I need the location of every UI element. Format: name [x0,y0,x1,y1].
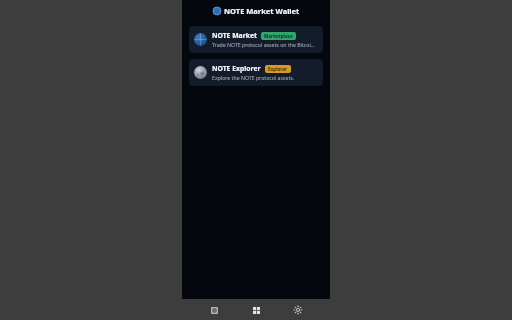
staticText: NOTE Market [212,31,257,40]
button[interactable]: Recent apps [288,300,308,320]
staticText: Trade NOTE protocol assets on the Bitcoi… [212,41,318,48]
staticText: NOTE Market Wallet [224,6,300,16]
button[interactable]: Back [204,300,224,320]
staticText: Explore the NOTE protocol assets. [212,74,295,81]
staticText: Marketplace [264,33,293,39]
staticText: Explorer [268,66,288,72]
staticText: NOTE Explorer [212,64,261,73]
button[interactable]: NOTE Market [189,26,323,53]
button[interactable]: NOTE Explorer [189,59,323,86]
button[interactable]: Home [246,300,266,320]
